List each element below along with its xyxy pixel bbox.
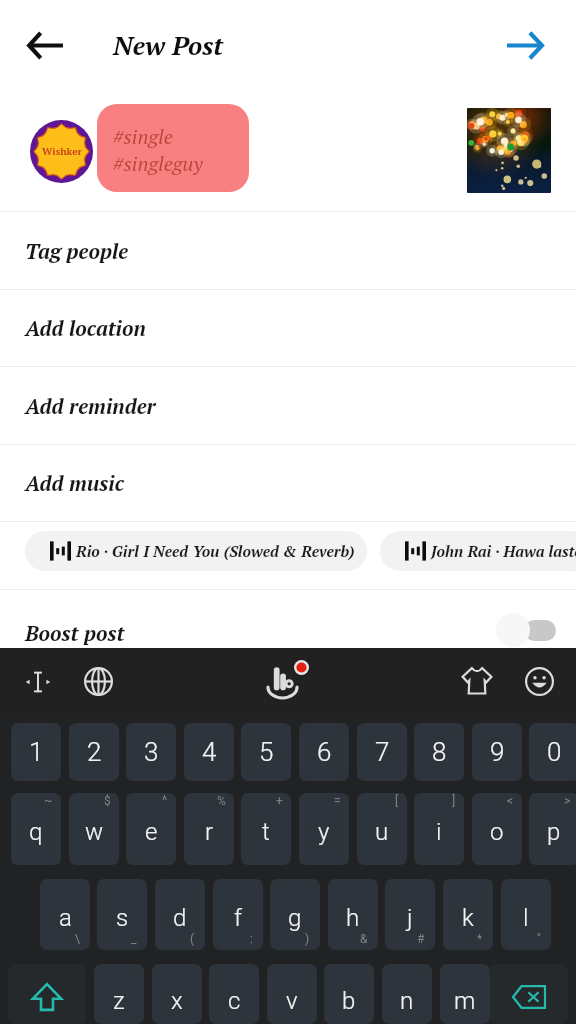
button[interactable]: 2 (69, 723, 119, 781)
button[interactable]: 6 (299, 723, 349, 781)
button[interactable]: Back (15, 21, 75, 69)
staticText: p (547, 818, 561, 846)
button[interactable]: Emoji (523, 665, 555, 697)
button[interactable]: Change language (82, 665, 114, 697)
button[interactable]: % (184, 793, 234, 865)
staticText: " (537, 932, 541, 946)
staticText: ^ (162, 794, 168, 808)
button[interactable]: Add location (0, 290, 576, 366)
staticText: k (462, 904, 474, 932)
staticText: c (228, 987, 241, 1015)
button[interactable]: Shift (8, 964, 86, 1024)
button[interactable]: m (440, 964, 490, 1024)
staticText: 3 (144, 737, 159, 767)
staticText: u (375, 818, 389, 846)
button[interactable]: _ (97, 879, 147, 950)
staticText: # (417, 932, 425, 946)
button[interactable]: & (328, 879, 378, 950)
staticText: o (490, 818, 504, 846)
button[interactable]: = (299, 793, 349, 865)
staticText: : (250, 932, 253, 946)
staticText: 5 (259, 737, 274, 767)
button[interactable]: 5 (241, 723, 291, 781)
button[interactable]: ^ (126, 793, 176, 865)
staticText: ( (190, 932, 195, 946)
staticText: f (234, 904, 242, 932)
staticText: 1 (29, 737, 44, 767)
button[interactable]: 1 (11, 723, 61, 781)
button[interactable]: Backspace (490, 964, 568, 1024)
button[interactable]: z (94, 964, 144, 1024)
staticText: Wishker (42, 145, 82, 158)
staticText: #single (113, 123, 173, 150)
button[interactable]: 3 (126, 723, 176, 781)
staticText: + (276, 794, 283, 808)
staticText: & (360, 932, 368, 946)
button[interactable]: Keyboard theme (461, 664, 493, 696)
staticText: > (564, 794, 571, 808)
button[interactable]: ~ (11, 793, 61, 865)
staticText: i (436, 818, 442, 846)
button[interactable]: #single (97, 104, 249, 192)
button[interactable]: c (209, 964, 259, 1024)
button[interactable]: Tag people (0, 212, 576, 289)
button[interactable]: : (213, 879, 263, 950)
staticText: Boost post (25, 619, 125, 647)
staticText: % (217, 794, 226, 808)
staticText: 4 (202, 737, 217, 767)
button[interactable]: b (324, 964, 374, 1024)
button[interactable]: " (501, 879, 551, 950)
staticText: z (113, 987, 125, 1015)
button[interactable]: x (152, 964, 202, 1024)
button[interactable]: Boost post (0, 590, 576, 667)
staticText: b (342, 987, 356, 1015)
staticText: John Rai · Hawa laste jaise (431, 541, 576, 562)
staticText: * (477, 932, 483, 946)
button[interactable]: v (267, 964, 317, 1024)
staticText: h (346, 904, 360, 932)
button[interactable]: Gesture typing (266, 660, 298, 692)
button[interactable]: 9 (472, 723, 522, 781)
button[interactable]: 4 (184, 723, 234, 781)
button[interactable]: 8 (414, 723, 464, 781)
staticText: n (400, 987, 414, 1015)
button[interactable]: $ (69, 793, 119, 865)
button[interactable]: n (382, 964, 432, 1024)
staticText: 9 (490, 737, 505, 767)
button[interactable]: Text edit (22, 666, 54, 698)
staticText: ] (452, 794, 456, 808)
staticText: w (85, 818, 104, 846)
staticText: a (59, 904, 72, 932)
button[interactable]: ( (155, 879, 205, 950)
staticText: Add reminder (25, 392, 156, 420)
staticText: m (454, 987, 476, 1015)
button[interactable]: 0 (529, 723, 576, 781)
button[interactable]: Selected photo (467, 108, 551, 193)
button[interactable]: ) (270, 879, 320, 950)
button[interactable]: * (443, 879, 493, 950)
button[interactable]: < (472, 793, 522, 865)
button[interactable]: Add music (0, 445, 576, 521)
staticText: 6 (317, 737, 332, 767)
staticText: Tag people (25, 237, 129, 265)
staticText: [ (395, 794, 399, 808)
staticText: 8 (432, 737, 447, 767)
button[interactable]: 7 (357, 723, 407, 781)
button[interactable]: \ (40, 879, 90, 950)
button[interactable]: Rio · Girl I Need You (Slowed & Reverb) (25, 531, 367, 571)
button[interactable]: [ (357, 793, 407, 865)
staticText: < (507, 794, 514, 808)
button[interactable]: Share post (492, 21, 556, 69)
button[interactable]: ] (414, 793, 464, 865)
button[interactable]: + (241, 793, 291, 865)
staticText: 7 (375, 737, 390, 767)
button[interactable]: > (529, 793, 576, 865)
staticText: Add music (25, 469, 124, 497)
staticText: t (262, 818, 270, 846)
staticText: New Post (113, 28, 224, 62)
staticText: 0 (547, 737, 562, 767)
button[interactable]: John Rai · Hawa laste jaise (380, 531, 576, 571)
button[interactable]: # (385, 879, 435, 950)
staticText: $ (104, 794, 111, 808)
button[interactable]: Add reminder (0, 367, 576, 444)
